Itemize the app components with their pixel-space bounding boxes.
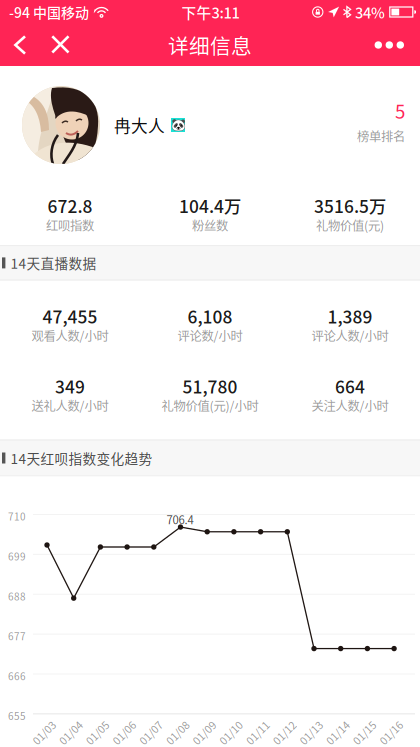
staticText: 01/15	[350, 725, 378, 740]
staticText: 01/03	[30, 725, 58, 740]
staticText: 下午3:11	[181, 1, 239, 23]
staticText: 🐼	[170, 118, 185, 132]
staticText: 5	[395, 97, 405, 124]
staticText: 349	[55, 373, 85, 398]
staticText: 699	[8, 549, 26, 563]
staticText: 01/07	[137, 725, 165, 740]
staticText: 01/05	[83, 725, 111, 740]
staticText: 送礼人数/小时	[31, 396, 108, 414]
staticText: 01/16	[377, 725, 405, 740]
staticText: 14天红呗指数变化趋势	[10, 448, 152, 468]
staticText: 672.8	[47, 193, 92, 218]
staticText: 1,389	[327, 303, 372, 328]
staticText: 104.4万	[179, 193, 241, 218]
staticText: 榜单排名	[357, 127, 405, 145]
staticText: 关注人数/小时	[311, 396, 388, 414]
staticText: 礼物价值(元)	[316, 216, 384, 234]
staticText: 01/06	[110, 725, 138, 740]
staticText: 47,455	[42, 303, 97, 328]
button[interactable]: Back	[0, 24, 45, 66]
staticText: 14天直播数据	[10, 253, 96, 273]
staticText: 664	[335, 373, 365, 398]
staticText: 礼物价值(元)/小时	[161, 396, 258, 414]
staticText: 01/04	[57, 725, 85, 740]
staticText: 详细信息	[168, 30, 252, 60]
staticText: 706.4	[166, 511, 193, 527]
staticText: 01/10	[217, 725, 245, 740]
staticText: 677	[8, 629, 26, 643]
staticText: 观看人数/小时	[31, 326, 108, 344]
staticText: 34%	[355, 1, 385, 23]
staticText: 51,780	[182, 373, 237, 398]
staticText: 666	[8, 669, 26, 683]
button[interactable]: More options	[359, 24, 420, 66]
staticText: 688	[8, 589, 26, 603]
staticText: 01/14	[324, 725, 352, 740]
staticText: 评论人数/小时	[311, 326, 388, 344]
staticText: 01/08	[163, 725, 191, 740]
staticText: 01/11	[244, 725, 272, 740]
staticText: 710	[8, 509, 26, 523]
staticText: 01/09	[190, 725, 218, 740]
staticText: 3516.5万	[314, 193, 386, 218]
staticText: -94 中国移动	[9, 2, 89, 22]
staticText: 655	[8, 708, 26, 723]
button[interactable]: Close	[45, 24, 77, 66]
staticText: 01/12	[270, 725, 298, 740]
staticText: 冉大人	[114, 113, 165, 137]
staticText: 01/13	[297, 725, 325, 740]
staticText: 评论数/小时	[177, 326, 242, 344]
staticText: 粉丝数	[192, 216, 228, 234]
staticText: 6,108	[187, 303, 232, 328]
staticText: 红呗指数	[46, 216, 94, 234]
button[interactable]: 冉大人	[22, 86, 262, 164]
